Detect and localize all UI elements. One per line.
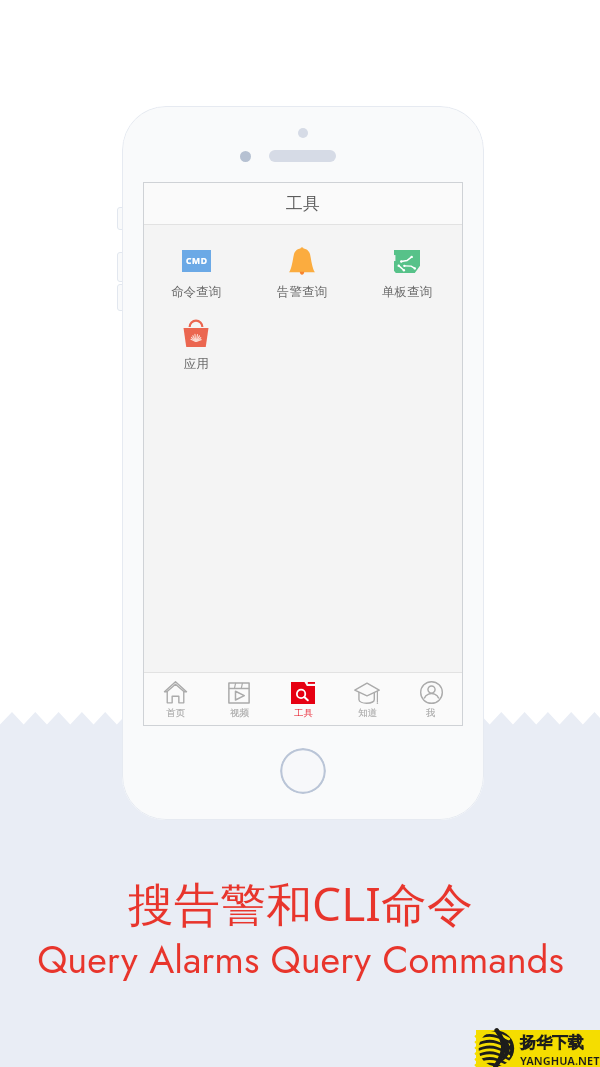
staticText: 工具 bbox=[294, 707, 313, 719]
staticText: 搜告警和CLI命令 bbox=[128, 872, 473, 935]
button[interactable]: 我 bbox=[399, 673, 463, 726]
button[interactable]: CMD bbox=[143, 247, 249, 300]
button[interactable]: 应用 bbox=[143, 319, 249, 372]
staticText: 扬华下载 bbox=[520, 1033, 584, 1053]
staticText: CMD bbox=[186, 255, 208, 267]
staticText: 知道 bbox=[358, 707, 377, 719]
staticText: 我 bbox=[426, 707, 436, 719]
staticText: 告警查询 bbox=[277, 284, 327, 300]
button[interactable]: 单板查询 bbox=[354, 247, 459, 300]
button[interactable]: 视频 bbox=[207, 673, 271, 726]
staticText: 命令查询 bbox=[171, 284, 221, 300]
staticText: 工具 bbox=[286, 193, 320, 214]
staticText: 单板查询 bbox=[382, 284, 432, 300]
button[interactable]: Home button bbox=[280, 748, 326, 794]
button[interactable]: 告警查询 bbox=[249, 247, 354, 300]
staticText: YANGHUA.NET bbox=[520, 1053, 600, 1067]
button[interactable]: 首页 bbox=[143, 673, 207, 726]
staticText: 首页 bbox=[166, 707, 185, 719]
staticText: Query Alarms Query Commands bbox=[37, 932, 564, 987]
button[interactable]: 知道 bbox=[335, 673, 399, 726]
staticText: 视频 bbox=[230, 707, 249, 719]
button[interactable]: 工具 bbox=[271, 673, 335, 726]
staticText: 应用 bbox=[184, 356, 209, 372]
